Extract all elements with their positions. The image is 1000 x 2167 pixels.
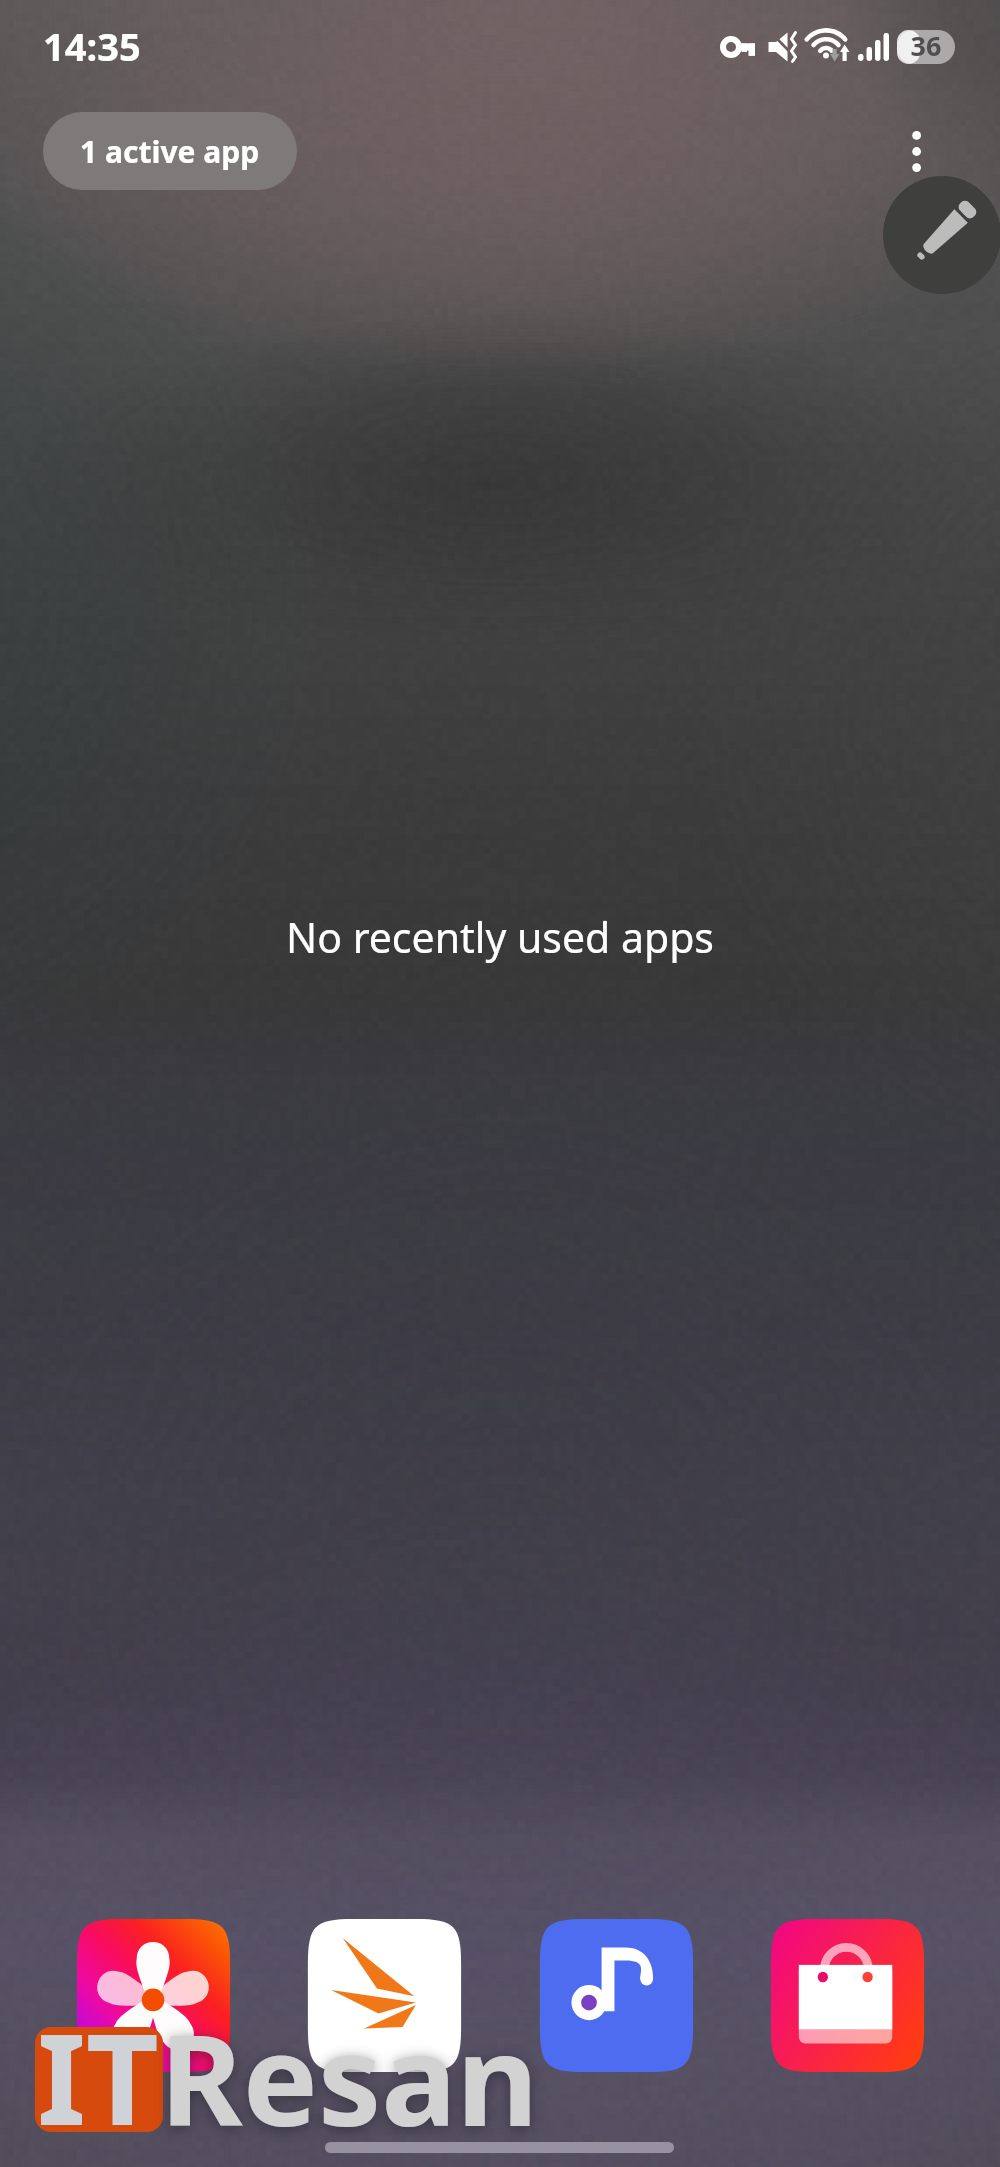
- button[interactable]: Gallery: [75, 1917, 232, 2074]
- staticText: 14:35: [43, 20, 141, 72]
- staticText: 36: [898, 27, 954, 64]
- button[interactable]: Smart Switch: [306, 1917, 463, 2074]
- staticText: IT: [37, 1990, 159, 2162]
- button[interactable]: More options: [872, 107, 961, 196]
- staticText: No recently used apps: [0, 909, 1000, 965]
- button[interactable]: Edit: [883, 176, 1000, 294]
- staticText: Resan: [160, 1991, 539, 2163]
- button[interactable]: Music: [538, 1917, 695, 2074]
- button[interactable]: Galaxy Store: [769, 1917, 926, 2074]
- button[interactable]: 1 active app: [43, 112, 297, 190]
- staticText: 1 active app: [80, 131, 260, 172]
